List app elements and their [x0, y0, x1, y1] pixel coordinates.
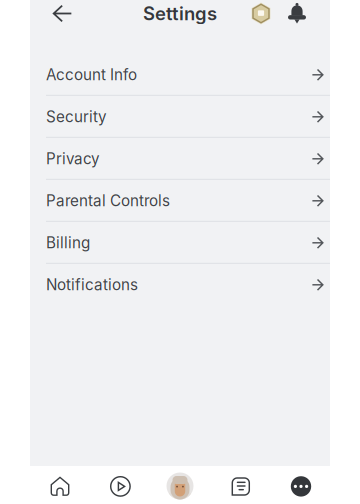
button[interactable]: Billing: [30, 222, 330, 264]
button[interactable]: Rewards: [248, 0, 274, 27]
button[interactable]: Messages: [210, 469, 270, 503]
staticText: Account Info: [46, 66, 137, 84]
staticText: Privacy: [46, 150, 100, 168]
button[interactable]: Notifications: [30, 264, 330, 306]
button[interactable]: Account Info: [30, 54, 330, 96]
button[interactable]: Parental Controls: [30, 180, 330, 222]
button[interactable]: More: [270, 469, 330, 503]
button[interactable]: Home: [30, 469, 90, 503]
staticText: Security: [46, 108, 107, 126]
button[interactable]: Back: [44, 0, 80, 27]
staticText: Notifications: [46, 276, 138, 294]
button[interactable]: Privacy: [30, 138, 330, 180]
button[interactable]: Profile: [150, 469, 210, 503]
staticText: Settings: [143, 2, 217, 25]
button[interactable]: Security: [30, 96, 330, 138]
staticText: Billing: [46, 234, 90, 252]
staticText: Parental Controls: [46, 192, 170, 210]
button[interactable]: Notifications: [284, 0, 310, 27]
button[interactable]: Watch: [90, 469, 150, 503]
